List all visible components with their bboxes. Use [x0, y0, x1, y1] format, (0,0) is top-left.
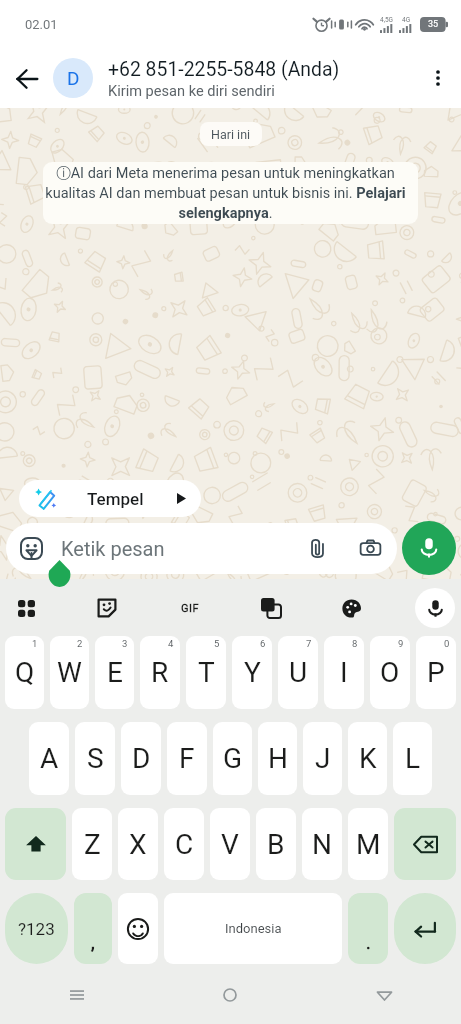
staticText: L: [405, 742, 421, 775]
staticText: 4,5G: [380, 16, 394, 24]
button[interactable]: 1: [5, 636, 44, 709]
button[interactable]: 2: [50, 636, 89, 709]
staticText: W: [57, 656, 82, 689]
button[interactable]: Voice input: [415, 588, 455, 628]
button[interactable]: Apps: [6, 588, 46, 628]
button[interactable]: Backspace: [394, 808, 456, 880]
button[interactable]: J: [303, 722, 342, 795]
staticText: Hari ini: [211, 127, 251, 142]
button[interactable]: GIF: [170, 588, 210, 628]
staticText: C: [175, 828, 194, 861]
staticText: Indonesia: [225, 921, 282, 936]
button[interactable]: Hari ini: [200, 122, 262, 146]
staticText: V: [221, 828, 239, 861]
staticText: .: [366, 932, 371, 953]
button[interactable]: D: [121, 722, 161, 795]
staticText: D: [67, 67, 80, 89]
staticText: I: [340, 656, 348, 689]
staticText: G: [223, 742, 243, 775]
staticText: 6: [260, 638, 266, 649]
button[interactable]: Tempel: [19, 480, 201, 517]
staticText: 0: [444, 638, 450, 649]
button[interactable]: V: [210, 808, 250, 880]
staticText: X: [129, 828, 147, 861]
staticText: A: [40, 742, 59, 775]
button[interactable]: S: [75, 722, 115, 795]
button[interactable]: Back: [362, 973, 406, 1017]
staticText: S: [87, 742, 104, 775]
button[interactable]: Shift: [5, 808, 66, 880]
staticText: GIF: [181, 602, 200, 615]
button[interactable]: ?123: [5, 893, 68, 964]
staticText: 8: [352, 638, 358, 649]
staticText: Tempel: [87, 489, 144, 509]
button[interactable]: F: [167, 722, 207, 795]
staticText: 4G: [402, 16, 411, 24]
staticText: D: [132, 742, 151, 775]
button[interactable]: K: [348, 722, 387, 795]
staticText: E: [107, 656, 123, 689]
staticText: 4: [168, 638, 174, 649]
staticText: ,: [91, 932, 95, 953]
staticText: ⓘAI dari Meta menerima pesan untuk menin…: [45, 164, 406, 222]
button[interactable]: Voice message: [402, 521, 456, 575]
staticText: M: [356, 828, 381, 861]
staticText: ?123: [18, 919, 55, 939]
button[interactable]: Theme: [331, 588, 371, 628]
button[interactable]: 6: [232, 636, 272, 709]
button[interactable]: H: [258, 722, 297, 795]
button[interactable]: ,: [74, 893, 112, 964]
button[interactable]: Back: [0, 52, 53, 105]
button[interactable]: B: [256, 808, 296, 880]
button[interactable]: Indonesia: [164, 893, 342, 964]
button[interactable]: X: [118, 808, 158, 880]
staticText: 3: [122, 638, 128, 649]
staticText: U: [289, 656, 308, 689]
button[interactable]: G: [213, 722, 252, 795]
button[interactable]: 8: [324, 636, 364, 709]
button[interactable]: 7: [278, 636, 318, 709]
button[interactable]: Emoji: [118, 893, 158, 964]
staticText: B: [267, 828, 285, 861]
button[interactable]: Enter: [394, 893, 456, 964]
button[interactable]: Z: [72, 808, 112, 880]
staticText: 2: [77, 638, 83, 649]
staticText: 35: [428, 19, 439, 30]
staticText: 9: [398, 638, 404, 649]
staticText: F: [179, 742, 195, 775]
button[interactable]: 3: [95, 636, 134, 709]
button[interactable]: Ketik pesan: [6, 523, 397, 574]
button[interactable]: C: [164, 808, 204, 880]
button[interactable]: D: [53, 58, 93, 98]
button[interactable]: 4: [140, 636, 180, 709]
button[interactable]: 5: [186, 636, 226, 709]
staticText: H: [268, 742, 288, 775]
button[interactable]: 9: [370, 636, 410, 709]
staticText: O: [380, 656, 400, 689]
staticText: Ketik pesan: [61, 537, 307, 560]
staticText: 1: [32, 638, 38, 649]
staticText: 5: [214, 638, 220, 649]
staticText: Kirim pesan ke diri sendiri: [108, 82, 275, 99]
staticText: Q: [15, 656, 35, 689]
staticText: R: [151, 656, 169, 689]
staticText: J: [315, 742, 331, 775]
button[interactable]: L: [393, 722, 432, 795]
button[interactable]: Recents: [55, 973, 99, 1017]
button[interactable]: 0: [416, 636, 456, 709]
button[interactable]: .: [348, 893, 388, 964]
button[interactable]: Home: [208, 973, 252, 1017]
staticText: +62 851-2255-5848 (Anda): [108, 58, 340, 81]
staticText: K: [359, 742, 377, 775]
button[interactable]: More options: [415, 55, 461, 101]
staticText: Z: [84, 828, 101, 861]
button[interactable]: A: [29, 722, 69, 795]
button[interactable]: ⓘAI dari Meta menerima pesan untuk menin…: [43, 162, 418, 224]
button[interactable]: +62 851-2255-5848 (Anda): [108, 58, 415, 99]
button[interactable]: N: [302, 808, 342, 880]
staticText: Y: [244, 656, 261, 689]
button[interactable]: M: [348, 808, 388, 880]
button[interactable]: Stickers: [87, 588, 127, 628]
button[interactable]: Translate: [251, 588, 291, 628]
staticText: P: [427, 656, 445, 689]
